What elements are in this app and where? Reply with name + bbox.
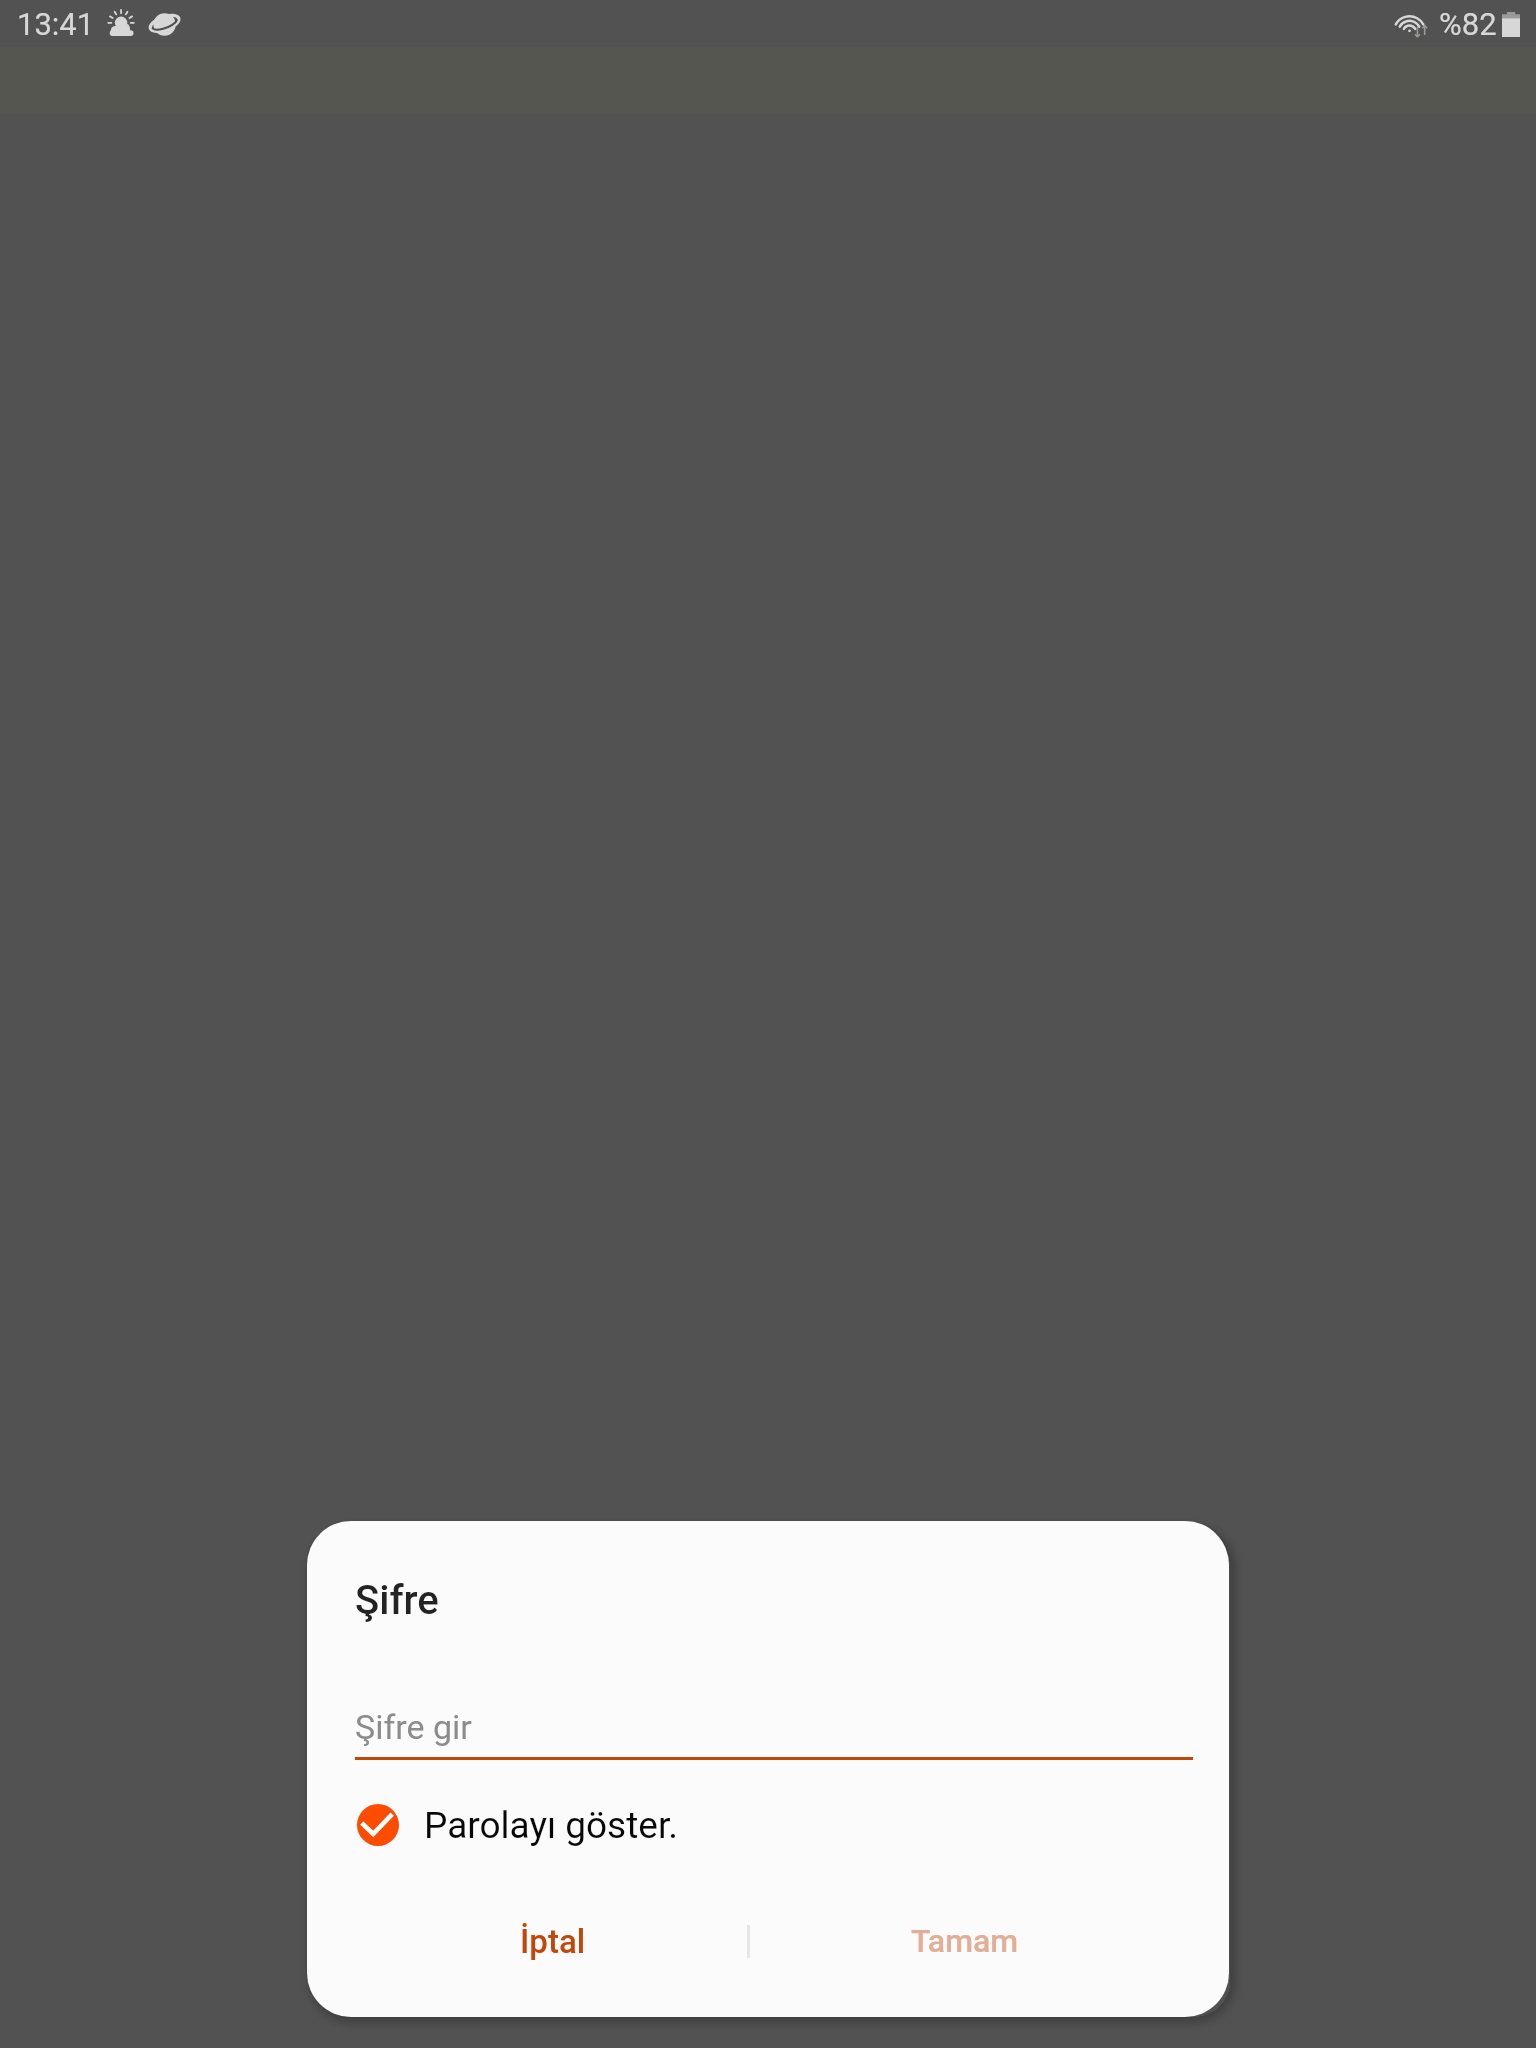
staticText: %82 bbox=[1439, 6, 1497, 42]
button[interactable]: İptal bbox=[353, 1899, 747, 1983]
staticText: Tamam bbox=[911, 1922, 1019, 1960]
button[interactable]: Kapat bbox=[0, 0, 1536, 2048]
staticText: Şifre gir bbox=[355, 1707, 472, 1747]
button[interactable]: Tamam bbox=[750, 1899, 1179, 1983]
button[interactable]: Parolayı göster. bbox=[357, 1803, 679, 1847]
staticText: İptal bbox=[520, 1922, 586, 1961]
button[interactable]: Şifre gir bbox=[355, 1687, 1193, 1760]
staticText: Parolayı göster. bbox=[424, 1804, 679, 1847]
staticText: 13:41 bbox=[17, 6, 95, 42]
staticText: Şifre bbox=[355, 1577, 439, 1624]
